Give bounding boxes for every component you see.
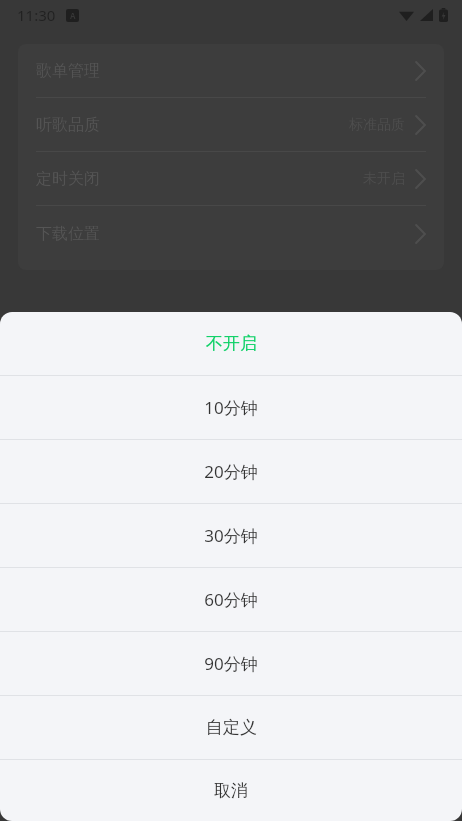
staticText: 歌单管理 bbox=[36, 61, 100, 81]
button[interactable]: 自定义 bbox=[0, 696, 462, 759]
staticText: 11:30 bbox=[17, 5, 56, 25]
staticText: 60分钟 bbox=[204, 588, 258, 611]
button[interactable]: 20分钟 bbox=[0, 440, 462, 503]
staticText: 下载位置 bbox=[36, 224, 100, 244]
staticText: 听歌品质 bbox=[36, 115, 100, 135]
staticText: A bbox=[70, 10, 76, 21]
staticText: 20分钟 bbox=[204, 460, 258, 483]
button[interactable]: 90分钟 bbox=[0, 632, 462, 695]
staticText: 不开启 bbox=[206, 333, 257, 354]
staticText: 标准品质 bbox=[349, 116, 405, 134]
staticText: 取消 bbox=[214, 780, 248, 801]
staticText: 30分钟 bbox=[204, 524, 258, 547]
staticText: 定时关闭 bbox=[36, 169, 100, 189]
staticText: 10分钟 bbox=[204, 396, 258, 419]
staticText: 自定义 bbox=[206, 717, 257, 738]
button[interactable]: 60分钟 bbox=[0, 568, 462, 631]
button[interactable]: 不开启 bbox=[0, 312, 462, 375]
button[interactable]: 10分钟 bbox=[0, 376, 462, 439]
staticText: 90分钟 bbox=[204, 652, 258, 675]
button[interactable]: 取消 bbox=[0, 760, 462, 821]
button[interactable]: 30分钟 bbox=[0, 504, 462, 567]
staticText: 未开启 bbox=[363, 170, 405, 188]
